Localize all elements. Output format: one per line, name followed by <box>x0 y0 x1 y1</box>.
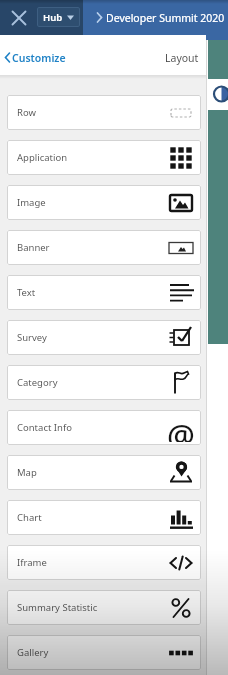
button[interactable]: Image <box>7 185 201 220</box>
button[interactable]: Iframe <box>7 545 201 580</box>
staticText: Row <box>17 106 36 119</box>
staticText: Layout <box>165 51 199 65</box>
staticText: @ <box>167 414 195 442</box>
button[interactable]: Survey <box>7 320 201 355</box>
button[interactable]: Contact Info <box>7 410 201 445</box>
button[interactable]: Application <box>7 140 201 175</box>
button[interactable]: Text <box>7 275 201 310</box>
button[interactable]: Category <box>7 365 201 400</box>
staticText: Image <box>17 196 46 209</box>
staticText: Customize <box>12 51 66 65</box>
staticText: Gallery <box>17 646 49 659</box>
staticText: Text <box>17 286 36 299</box>
button[interactable]: Gallery <box>7 635 201 670</box>
button[interactable] <box>8 7 30 29</box>
button[interactable]: Hub <box>37 7 80 27</box>
staticText: Contact Info <box>17 421 72 434</box>
staticText: Developer Summit 2020 <box>106 11 225 25</box>
staticText: Chart <box>17 511 42 524</box>
staticText: Map <box>17 466 37 479</box>
button[interactable]: Chart <box>7 500 201 535</box>
staticText: Hub <box>43 11 63 24</box>
button[interactable]: Summary Statistic <box>7 590 201 625</box>
staticText: Summary Statistic <box>17 601 98 614</box>
staticText: Iframe <box>17 556 47 569</box>
button[interactable]: Banner <box>7 230 201 265</box>
button[interactable]: Customize <box>0 40 66 75</box>
staticText: Category <box>17 376 58 389</box>
button[interactable]: Developer Summit 2020 <box>0 0 228 35</box>
button[interactable]: Row <box>7 95 201 130</box>
staticText: Survey <box>17 331 47 344</box>
staticText: Application <box>17 151 68 164</box>
button[interactable]: Map <box>7 455 201 490</box>
staticText: Banner <box>17 241 50 254</box>
